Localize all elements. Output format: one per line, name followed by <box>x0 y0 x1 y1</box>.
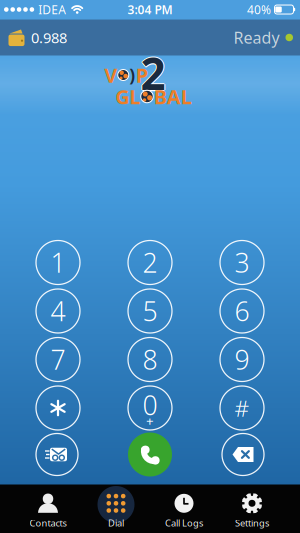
staticText: 40% <box>247 1 271 17</box>
staticText: GL <box>115 83 140 110</box>
staticText: BAL <box>154 83 192 110</box>
staticText: IDEA <box>38 1 66 17</box>
staticText: 7 <box>50 342 65 377</box>
button[interactable]: 4 <box>36 289 80 333</box>
button[interactable]: 3 <box>220 240 264 284</box>
staticText: 4 <box>50 293 65 329</box>
button[interactable]: 9 <box>220 337 264 381</box>
staticText: 9 <box>234 342 249 377</box>
staticText: ) <box>129 63 135 86</box>
staticText: 5 <box>142 293 157 329</box>
staticText: Settings <box>235 517 269 529</box>
staticText: 2 <box>139 44 164 102</box>
staticText: 3:04 PM <box>127 1 172 17</box>
button[interactable]: 5 <box>128 289 172 333</box>
button[interactable]: 8 <box>128 337 172 381</box>
staticText: 2 <box>142 44 167 102</box>
button[interactable]: Contacts <box>14 484 82 533</box>
staticText: 6 <box>234 293 249 329</box>
staticText: 2 <box>140 44 165 102</box>
staticText: # <box>234 393 249 423</box>
staticText: 1 <box>50 245 65 280</box>
button[interactable]: # <box>220 386 264 430</box>
button[interactable]: Messages <box>36 433 78 475</box>
button[interactable]: Settings <box>218 484 286 533</box>
button[interactable]: 6 <box>220 289 264 333</box>
staticText: Call Logs <box>165 517 203 529</box>
staticText: Contacts <box>29 517 66 529</box>
button[interactable]: 2 <box>128 240 172 284</box>
staticText: Ready <box>233 27 279 48</box>
staticText: V <box>104 62 117 88</box>
staticText: 2 <box>140 43 165 101</box>
button[interactable]: Call Logs <box>150 484 218 533</box>
staticText: 0.988 <box>31 28 67 47</box>
staticText: P <box>136 62 148 88</box>
staticText: Dial <box>108 517 124 529</box>
staticText: + <box>146 412 154 429</box>
button[interactable]: Dial <box>82 484 150 533</box>
staticText: 2 <box>140 45 165 103</box>
button[interactable]: 0 <box>128 386 172 430</box>
button[interactable]: Delete <box>222 433 264 475</box>
button[interactable]: 1 <box>36 240 80 284</box>
staticText: 2 <box>142 245 157 280</box>
staticText: 0 <box>142 387 157 423</box>
staticText: 8 <box>142 342 157 377</box>
staticText: 3 <box>234 245 249 280</box>
button[interactable]: 7 <box>36 337 80 381</box>
button[interactable]: Call <box>128 432 172 476</box>
button[interactable]: Asterisk <box>36 386 80 430</box>
